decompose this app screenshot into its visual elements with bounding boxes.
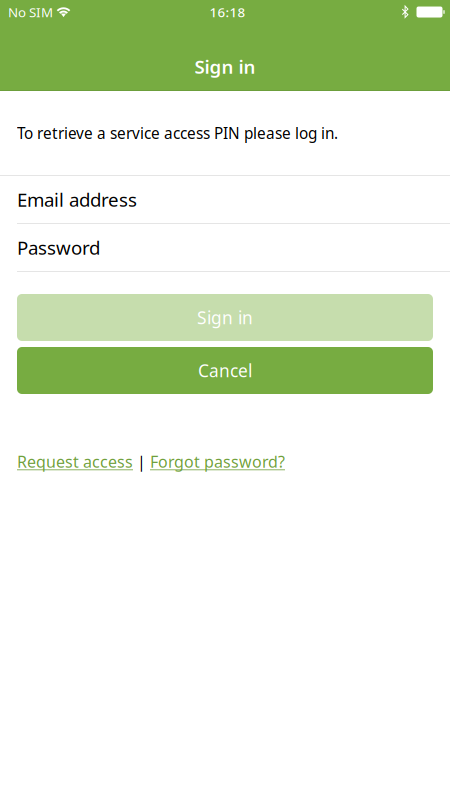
button[interactable]: Password: [0, 224, 450, 271]
staticText: To retrieve a service access PIN please …: [17, 123, 338, 143]
staticText: Sign in: [194, 54, 255, 79]
staticText: 16:18: [209, 3, 245, 21]
button[interactable]: Sign in: [17, 294, 433, 341]
button[interactable]: Cancel: [17, 347, 433, 394]
button[interactable]: Request access: [17, 451, 133, 472]
staticText: Sign in: [197, 306, 253, 329]
button[interactable]: Email address: [0, 176, 450, 223]
button[interactable]: Forgot password?: [150, 451, 285, 472]
staticText: Email address: [17, 187, 137, 212]
staticText: Password: [17, 235, 100, 260]
staticText: No SIM: [8, 3, 53, 21]
staticText: Cancel: [198, 359, 252, 382]
staticText: Request access: [17, 451, 133, 472]
staticText: Forgot password?: [150, 451, 285, 472]
staticText: |: [133, 451, 150, 472]
